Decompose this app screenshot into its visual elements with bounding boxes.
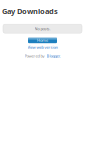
button[interactable]: Blogger. [46, 53, 60, 59]
staticText: Blogger. [46, 53, 60, 59]
staticText: Powered by [24, 53, 44, 59]
staticText: View web version [27, 44, 57, 50]
staticText: Gay Downloads [2, 6, 58, 16]
staticText: No posts. [34, 26, 50, 31]
staticText: Home [37, 37, 48, 43]
button[interactable]: Home [28, 37, 57, 43]
button[interactable]: View web version [0, 45, 85, 49]
